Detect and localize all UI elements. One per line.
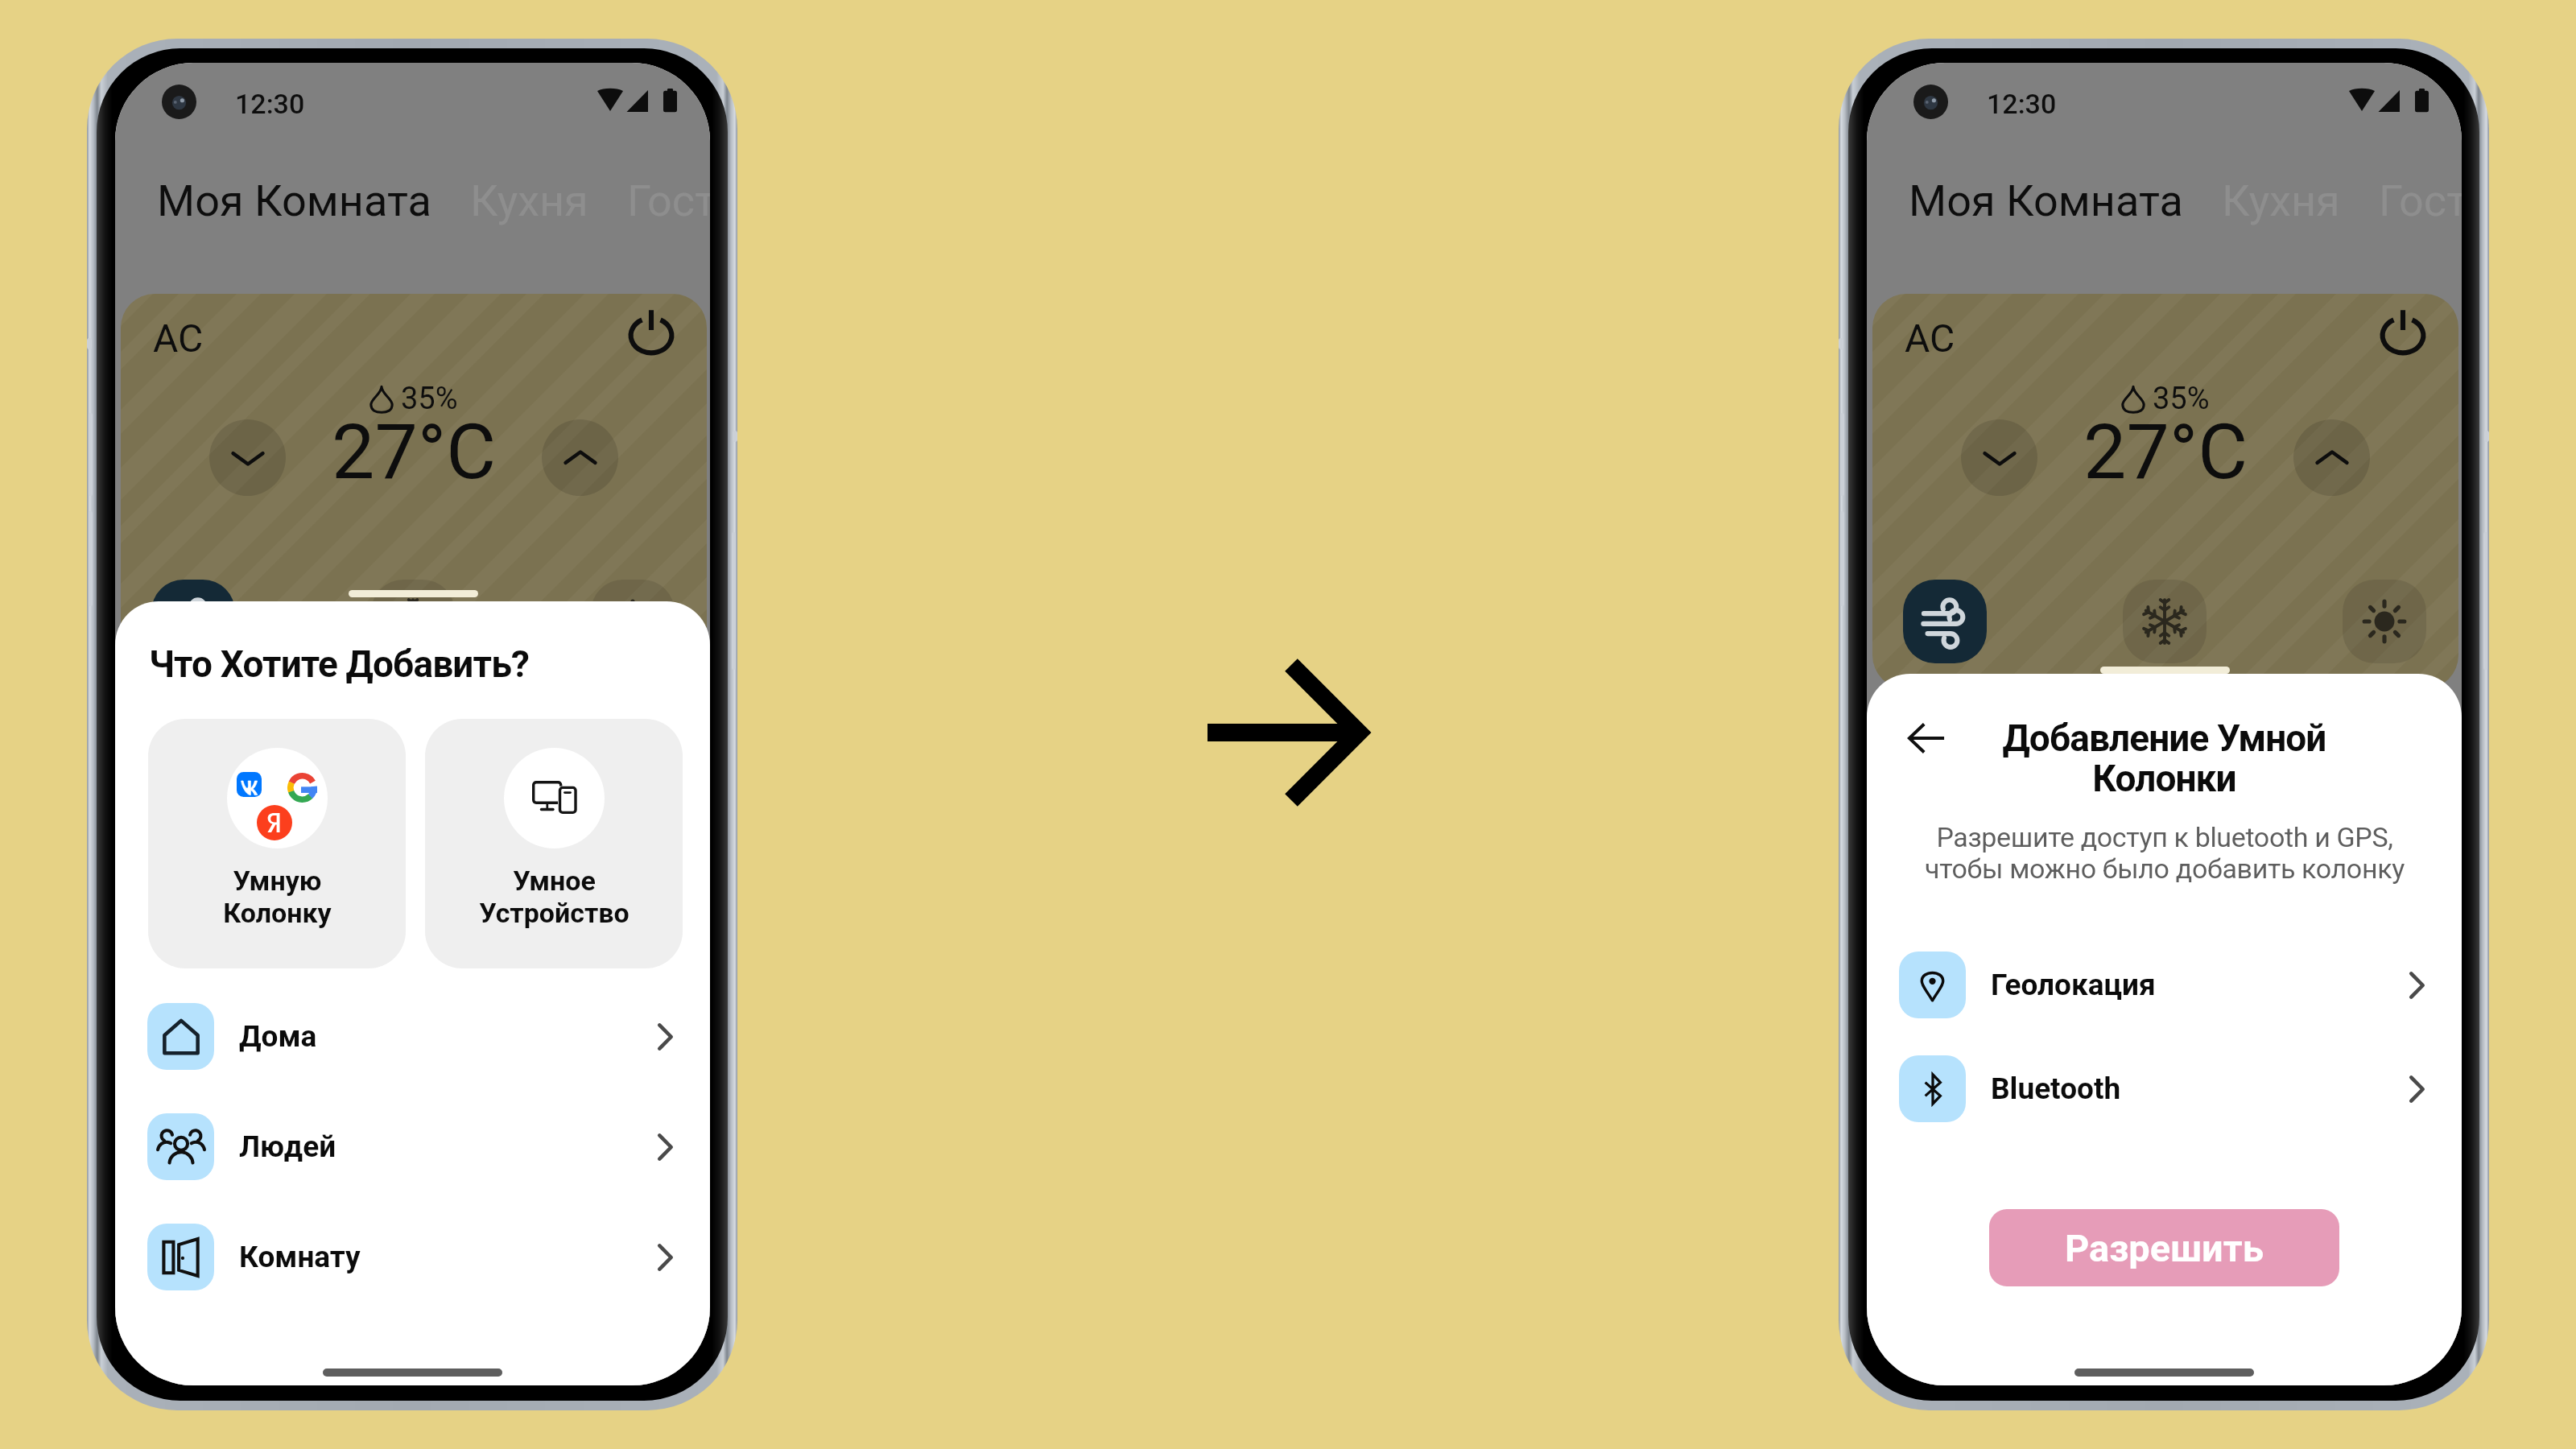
staticText: 35% — [2153, 381, 2210, 417]
staticText: Кухня — [470, 175, 588, 226]
button[interactable]: Гостиная — [2379, 175, 2462, 226]
staticText: Гостиная — [2379, 175, 2462, 226]
button[interactable]: Умную Колонку — [148, 719, 406, 968]
staticText: 12:30 — [235, 88, 305, 120]
button[interactable]: Кухня — [470, 175, 588, 226]
button[interactable]: Комнату — [115, 1224, 710, 1290]
staticText: Моя Комната — [157, 175, 431, 226]
staticText: Комнату — [239, 1240, 361, 1274]
button[interactable]: Decrease temperature — [1961, 419, 2037, 496]
staticText: AC — [1905, 316, 1955, 361]
button[interactable]: Геолокация — [1867, 952, 2462, 1018]
button[interactable]: Power — [628, 309, 675, 356]
button[interactable]: Моя Комната — [1909, 175, 2183, 226]
button[interactable]: Кухня — [2222, 175, 2340, 226]
staticText: 27°C — [2083, 407, 2248, 497]
button[interactable]: Дома — [115, 1003, 710, 1070]
staticText: 27°C — [332, 407, 497, 497]
button[interactable]: Fan mode — [1903, 580, 1987, 663]
button[interactable]: Cool mode — [2123, 580, 2207, 663]
staticText: Что Хотите Добавить? — [149, 642, 530, 686]
staticText: Добавление Умной Колонки — [2002, 716, 2326, 800]
staticText: Кухня — [2222, 175, 2340, 226]
button[interactable]: Моя Комната — [157, 175, 431, 226]
button[interactable]: Умное Устройство — [425, 719, 683, 968]
staticText: AC — [153, 316, 204, 361]
staticText: Разрешите доступ к bluetooth и GPS, чтоб… — [1925, 821, 2405, 885]
staticText: Умное Устройство — [479, 865, 630, 929]
staticText: Bluetooth — [1991, 1071, 2121, 1106]
staticText: 12:30 — [1987, 88, 2057, 120]
button[interactable]: Людей — [115, 1113, 710, 1180]
staticText: Гостиная — [627, 175, 710, 226]
staticText: Людей — [239, 1129, 336, 1164]
button[interactable]: Back — [1904, 716, 1949, 761]
button[interactable]: Increase temperature — [2293, 419, 2370, 496]
button[interactable]: Increase temperature — [542, 419, 618, 496]
button[interactable]: Power — [2380, 309, 2426, 356]
staticText: Моя Комната — [1909, 175, 2183, 226]
staticText: Умную Колонку — [223, 865, 332, 929]
staticText: 35% — [401, 381, 458, 417]
staticText: Дома — [239, 1019, 317, 1054]
button[interactable]: Bluetooth — [1867, 1055, 2462, 1122]
button[interactable]: Heat mode — [2343, 580, 2426, 663]
button[interactable]: Fan mode — [151, 580, 235, 663]
staticText: Разрешить — [2065, 1226, 2264, 1270]
button[interactable]: Cool mode — [371, 580, 455, 663]
button[interactable]: Heat mode — [591, 580, 675, 663]
button[interactable]: Decrease temperature — [209, 419, 286, 496]
staticText: Геолокация — [1991, 968, 2156, 1002]
button[interactable]: Разрешить — [1989, 1209, 2339, 1286]
button[interactable]: Гостиная — [627, 175, 710, 226]
